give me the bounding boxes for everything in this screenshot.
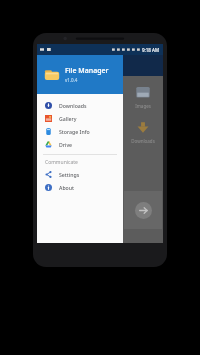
staticText: Images: [135, 103, 151, 109]
button[interactable]: Gallery: [37, 112, 123, 125]
button[interactable]: Downloads: [37, 99, 123, 112]
button[interactable]: Images: [123, 85, 163, 109]
button[interactable]: File Manager: [37, 55, 123, 94]
staticText: Downloads: [131, 138, 155, 144]
button[interactable]: Storage Info: [37, 125, 123, 138]
staticText: v1.0.4: [65, 77, 78, 83]
staticText: File Manager: [65, 66, 109, 76]
staticText: Communicate: [45, 159, 78, 166]
staticText: Downloads: [59, 102, 87, 109]
button[interactable]: Downloads: [123, 120, 163, 144]
staticText: Drive: [59, 141, 73, 148]
button[interactable]: Settings: [37, 168, 123, 181]
button[interactable]: About: [37, 181, 123, 194]
staticText: 9:18 AM: [142, 47, 160, 53]
staticText: About: [59, 184, 75, 191]
staticText: Gallery: [59, 115, 77, 122]
button[interactable]: Go: [124, 191, 162, 229]
staticText: Settings: [59, 171, 80, 178]
staticText: Storage Info: [59, 128, 90, 135]
button[interactable]: Drive: [37, 138, 123, 151]
